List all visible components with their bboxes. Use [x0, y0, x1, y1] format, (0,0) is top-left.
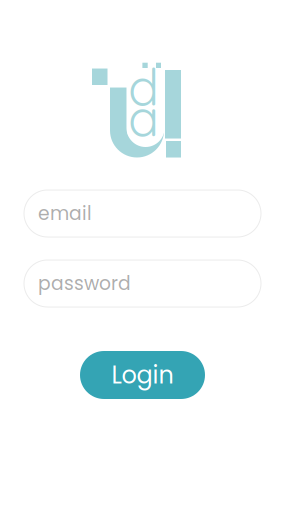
staticText: email: [38, 200, 92, 226]
staticText: a: [124, 76, 162, 155]
staticText: Login: [111, 358, 173, 392]
button[interactable]: Login: [80, 351, 205, 399]
button[interactable]: password: [24, 260, 261, 307]
staticText: d: [128, 54, 159, 118]
staticText: password: [38, 270, 131, 296]
staticText: a: [128, 85, 159, 149]
staticText: d: [124, 49, 160, 123]
button[interactable]: email: [24, 190, 261, 237]
